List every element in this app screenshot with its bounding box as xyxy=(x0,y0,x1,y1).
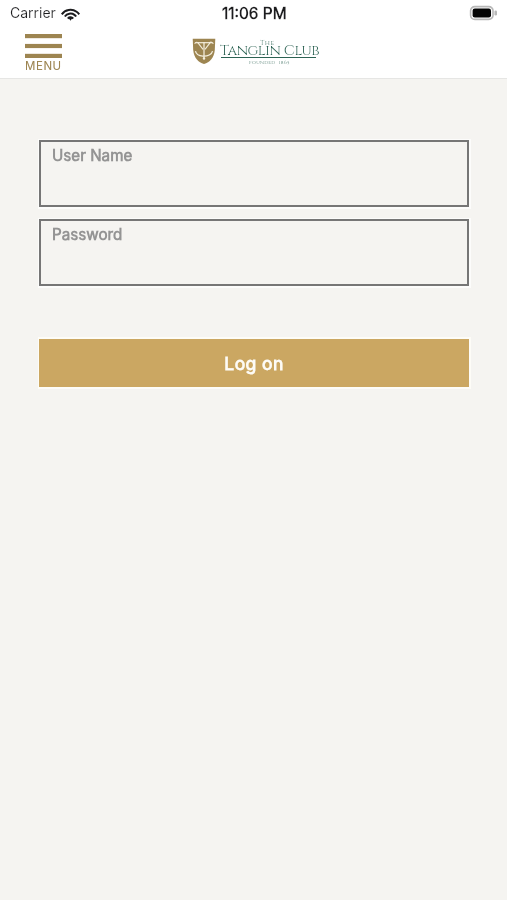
staticText: User Name xyxy=(52,146,133,164)
staticText: 11:06 PM xyxy=(222,4,287,23)
staticText: Password xyxy=(52,225,123,243)
staticText: MENU xyxy=(25,59,62,73)
staticText: Tanglin Club xyxy=(220,41,320,61)
staticText: Log on xyxy=(224,353,284,374)
staticText: The xyxy=(260,38,275,47)
button[interactable]: Open navigation menu xyxy=(19,30,68,76)
staticText: Carrier xyxy=(10,4,56,21)
button[interactable]: Password xyxy=(38,218,471,288)
button[interactable]: Log on xyxy=(38,337,471,389)
staticText: Founded 1865 xyxy=(249,59,290,66)
button[interactable]: User Name xyxy=(38,139,471,209)
